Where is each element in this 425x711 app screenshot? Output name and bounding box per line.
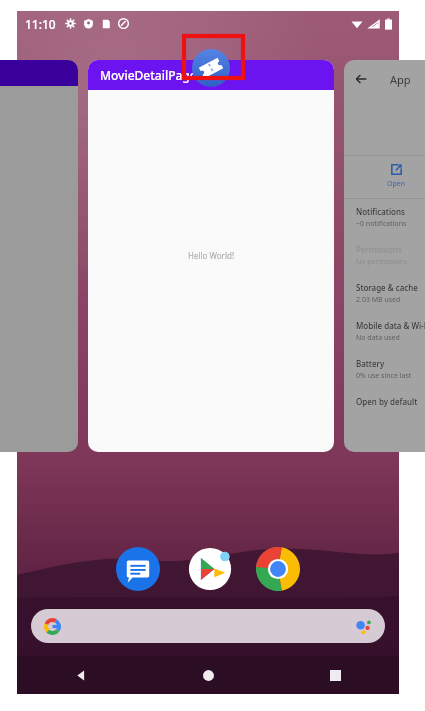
staticText: Open by default (356, 396, 418, 407)
button[interactable]: Notifications (344, 199, 425, 237)
button[interactable]: App (344, 60, 425, 452)
staticText: Hello World! (188, 250, 235, 261)
staticText: Battery (356, 358, 385, 369)
button[interactable]: MovieDetailPage (88, 60, 334, 452)
button[interactable]: Open (344, 156, 425, 198)
button[interactable]: Play Store (186, 545, 234, 593)
button[interactable]: Battery (344, 351, 425, 389)
staticText: Permissions (356, 244, 402, 255)
button[interactable]: Messages (116, 547, 160, 591)
staticText: Notifications (356, 206, 405, 217)
button[interactable]: MovieDetailPage app icon (192, 49, 230, 87)
staticText: No data used (356, 333, 400, 343)
button[interactable]: Recent apps (272, 656, 399, 694)
staticText: 11:10 (25, 16, 56, 32)
button[interactable] (0, 60, 78, 452)
button[interactable]: Storage & cache (344, 275, 425, 313)
staticText: Storage & cache (356, 282, 418, 293)
button[interactable]: Chrome (256, 547, 300, 591)
staticText: 2.03 MB used (356, 295, 401, 305)
button[interactable]: Home (145, 656, 272, 694)
staticText: Mobile data & Wi-Fi (356, 320, 425, 331)
staticText: No permissions (356, 257, 408, 267)
staticText: ~0 notifications (356, 219, 407, 229)
button[interactable]: Permissions (344, 237, 425, 275)
button[interactable]: Open by default (344, 389, 425, 427)
staticText: Open (387, 179, 406, 189)
button[interactable] (31, 609, 385, 643)
staticText: App (390, 72, 411, 87)
staticText: MovieDetailPage (100, 67, 197, 83)
button[interactable]: Mobile data & Wi-Fi (344, 313, 425, 351)
staticText: 0% use since last (356, 371, 412, 381)
button[interactable]: Back (17, 656, 145, 694)
